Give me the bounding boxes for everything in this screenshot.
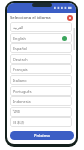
button[interactable] bbox=[67, 15, 73, 21]
button[interactable]: Próximo bbox=[10, 131, 74, 140]
staticText: Próximo bbox=[34, 133, 50, 138]
staticText: Français bbox=[13, 67, 28, 72]
staticText: Deutsch bbox=[13, 57, 28, 62]
button[interactable]: Italiano bbox=[10, 75, 72, 85]
button[interactable]: ไทย bbox=[10, 107, 72, 117]
staticText: Selecciona el idioma bbox=[10, 15, 51, 21]
staticText: ไทย bbox=[13, 109, 20, 115]
button[interactable]: Português bbox=[10, 86, 72, 96]
staticText: العربية bbox=[13, 25, 24, 29]
button[interactable]: Español bbox=[10, 43, 72, 53]
button[interactable]: Deutsch bbox=[10, 54, 72, 64]
staticText: Português bbox=[13, 89, 32, 94]
staticText: 日本語 bbox=[13, 120, 25, 125]
staticText: Italiano bbox=[13, 78, 27, 83]
button[interactable]: العربية bbox=[10, 22, 72, 32]
staticText: Español bbox=[13, 46, 28, 51]
button[interactable]: Indonesia bbox=[10, 96, 72, 106]
button[interactable]: 日本語 bbox=[10, 117, 72, 127]
button[interactable]: Français bbox=[10, 64, 72, 74]
staticText: English bbox=[13, 36, 26, 41]
button[interactable]: English bbox=[10, 33, 72, 43]
staticText: Indonesia bbox=[13, 99, 31, 104]
